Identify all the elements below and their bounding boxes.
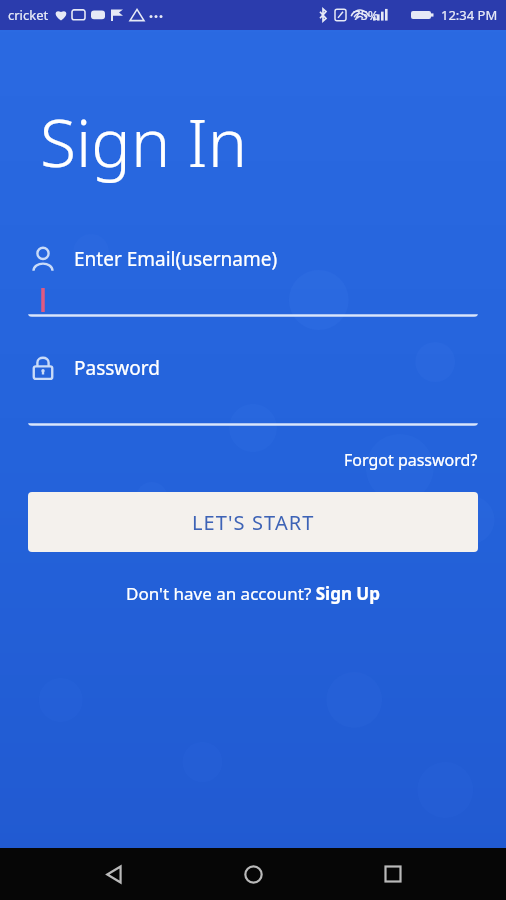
button[interactable]: Email field: [28, 244, 478, 317]
staticText: Don't have an account? Sign Up: [126, 582, 380, 605]
staticText: cricket: [8, 6, 49, 24]
button[interactable]: LET'S START: [28, 492, 478, 552]
button[interactable]: Password field: [28, 353, 478, 426]
button[interactable]: Forgot password?: [342, 444, 480, 476]
staticText: Enter Email(username): [74, 246, 278, 272]
staticText: 75%: [353, 6, 379, 24]
staticText: LET'S START: [192, 509, 315, 536]
staticText: Password: [74, 355, 160, 381]
button[interactable]: Don't have an account? Sign Up: [120, 578, 386, 609]
staticText: 12:34 PM: [441, 6, 498, 24]
button[interactable]: Back: [88, 848, 140, 900]
button[interactable]: Home: [227, 848, 279, 900]
button[interactable]: Recents: [367, 848, 419, 900]
staticText: Forgot password?: [344, 449, 478, 471]
staticText: Sign In: [40, 96, 248, 186]
